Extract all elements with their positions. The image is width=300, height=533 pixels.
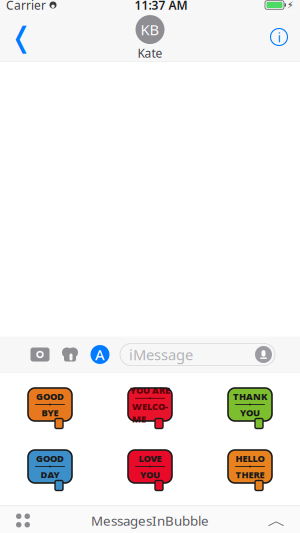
staticText: WELCOME (132, 400, 168, 425)
staticText: ❬ (9, 21, 32, 53)
button[interactable]: iMessage (120, 343, 275, 365)
staticText: iMessage (129, 345, 193, 364)
staticText: ⚡︎ (287, 0, 294, 10)
staticText: Carrier (6, 0, 46, 13)
staticText: THERE (235, 468, 264, 481)
staticText: YOU (140, 468, 160, 481)
staticText: BYE (41, 406, 58, 419)
staticText: 11:37 AM (134, 0, 187, 13)
button[interactable]: Details (262, 16, 296, 58)
staticText: LOVE (138, 452, 161, 464)
button[interactable]: Good Day sticker (0, 442, 100, 498)
staticText: ︿ (267, 509, 286, 532)
button[interactable]: Love You sticker (100, 442, 200, 498)
button[interactable]: Browse apps (4, 505, 42, 533)
button[interactable]: Thank You sticker (200, 380, 300, 436)
staticText: YOU ARE (130, 384, 170, 396)
button[interactable]: Hello There sticker (200, 442, 300, 498)
button[interactable]: You Are Welcome sticker (100, 380, 200, 436)
button[interactable]: Digital Touch (55, 339, 85, 369)
staticText: GOOD (36, 390, 64, 402)
staticText: Kate (137, 45, 162, 61)
staticText: i (277, 28, 280, 46)
staticText: DAY (40, 468, 59, 481)
staticText: HELLO (235, 452, 264, 464)
button[interactable]: Camera (25, 339, 55, 369)
staticText: THANK (233, 390, 267, 402)
staticText: KB (140, 20, 159, 39)
button[interactable]: Back (4, 16, 38, 58)
staticText: GOOD (36, 452, 64, 464)
staticText: A (95, 345, 105, 364)
button[interactable]: Expand (258, 505, 296, 533)
staticText: MessagesInBubble (91, 512, 209, 529)
button[interactable]: Good Bye sticker (0, 380, 100, 436)
button[interactable]: App Store (85, 339, 115, 369)
staticText: YOU (240, 406, 260, 419)
